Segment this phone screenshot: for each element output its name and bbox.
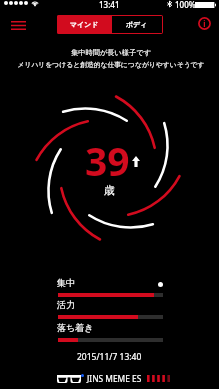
button[interactable]: 活力 <box>57 299 163 319</box>
button[interactable]: 集中 <box>57 277 163 297</box>
staticText: マインド <box>70 20 99 29</box>
staticText: 2015/11/7 13:40 <box>77 351 142 363</box>
staticText: 集中時間が長い様子です <box>71 48 151 57</box>
staticText: 13:41 <box>99 0 120 10</box>
button[interactable]: マインド <box>57 15 111 34</box>
staticText: 歳 <box>104 183 115 197</box>
button[interactable]: ボディ <box>112 16 162 33</box>
staticText: 100% <box>175 0 196 10</box>
staticText: ボディ <box>126 20 148 29</box>
button[interactable]: JINS MEME ES <box>0 369 219 387</box>
button[interactable]: Menu <box>4 14 32 35</box>
staticText: i <box>203 17 206 29</box>
staticText: 39 <box>85 134 130 187</box>
staticText: JINS MEME ES <box>87 373 142 384</box>
staticText: 集中 <box>57 277 75 288</box>
staticText: 活力 <box>57 299 75 310</box>
staticText: メリハリをつけると創造的な仕事につながりやすいそうです <box>17 60 205 69</box>
button[interactable]: Info <box>195 14 213 32</box>
staticText: 落ち着き <box>57 322 94 333</box>
button[interactable]: 落ち着き <box>57 322 163 342</box>
